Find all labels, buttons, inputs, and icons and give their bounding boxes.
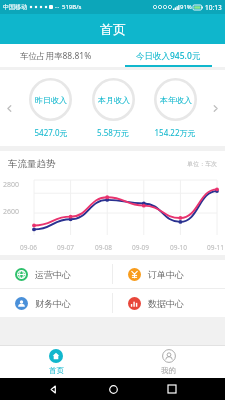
staticText: 09-10 <box>170 243 187 252</box>
button[interactable]: 今日收入945.0元 <box>112 44 225 67</box>
staticText: 09-09 <box>132 243 149 252</box>
staticText: 09-07 <box>57 243 74 252</box>
button[interactable]: Recents <box>165 382 179 396</box>
button[interactable]: 本年收入 <box>144 70 206 146</box>
staticText: 154.22万元 <box>154 127 196 138</box>
staticText: 09-06 <box>20 243 37 252</box>
button[interactable]: 运营中心 <box>0 260 112 288</box>
button[interactable]: 本月收入 <box>82 70 144 146</box>
staticText: 91% <box>180 3 192 11</box>
staticText: 本月收入 <box>98 95 130 105</box>
button[interactable]: Previous <box>0 70 19 146</box>
staticText: 单位：车次 <box>187 160 217 168</box>
button[interactable]: Next <box>206 70 225 146</box>
staticText: ··· <box>55 4 60 11</box>
staticText: 2800 <box>3 180 20 190</box>
staticText: 数据中心 <box>148 298 184 309</box>
staticText: 运营中心 <box>35 269 71 280</box>
staticText: 09-08 <box>95 243 112 252</box>
button[interactable]: 车位占用率88.81% <box>0 44 112 67</box>
staticText: 5427.0元 <box>34 127 68 138</box>
staticText: 5.58万元 <box>97 127 129 138</box>
staticText: 订单中心 <box>148 269 184 280</box>
staticText: 09-11 <box>207 243 224 252</box>
button[interactable]: 昨日收入 <box>19 70 82 146</box>
button[interactable]: Back <box>46 382 60 396</box>
staticText: 首页 <box>100 21 126 37</box>
staticText: 本年收入 <box>160 95 192 105</box>
staticText: 2600 <box>3 207 20 217</box>
staticText: 财务中心 <box>35 298 71 309</box>
staticText: 519B/s <box>62 3 82 11</box>
staticText: 车位占用率88.81% <box>20 50 92 62</box>
button[interactable]: 首页 <box>0 346 112 378</box>
staticText: 车流量趋势 <box>8 158 56 170</box>
button[interactable]: Home <box>106 382 120 396</box>
button[interactable]: 我的 <box>112 346 225 378</box>
button[interactable]: 订单中心 <box>113 260 225 288</box>
button[interactable]: 数据中心 <box>113 289 225 317</box>
staticText: 昨日收入 <box>35 95 67 105</box>
staticText: 中国移动 <box>3 3 27 11</box>
button[interactable]: 财务中心 <box>0 289 112 317</box>
staticText: 我的 <box>161 366 176 375</box>
staticText: 今日收入945.0元 <box>136 50 201 62</box>
staticText: 首页 <box>49 366 64 375</box>
staticText: 10:13 <box>205 3 222 12</box>
